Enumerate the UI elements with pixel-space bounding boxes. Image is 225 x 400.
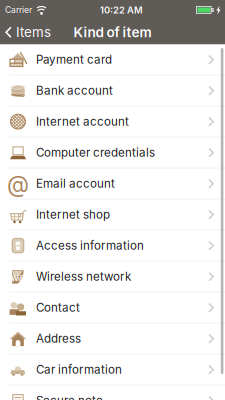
button[interactable]: Internet shop <box>0 199 225 230</box>
staticText: Items <box>16 24 51 40</box>
staticText: Carrier <box>5 5 32 15</box>
button[interactable]: Secure note <box>0 385 225 400</box>
staticText: Computer credentials <box>36 146 155 160</box>
staticText: Internet shop <box>36 208 110 222</box>
staticText: Address <box>36 332 81 346</box>
staticText: Internet account <box>36 115 129 129</box>
button[interactable]: Payment card <box>0 44 225 75</box>
staticText: Car information <box>36 363 122 377</box>
button[interactable]: Address <box>0 323 225 354</box>
staticText: Secure note <box>36 394 103 400</box>
staticText: Kind of item <box>73 24 151 40</box>
button[interactable]: Bank account <box>0 75 225 106</box>
button[interactable]: Internet account <box>0 106 225 137</box>
staticText: Bank account <box>36 84 113 98</box>
staticText: Access information <box>36 239 144 253</box>
staticText: 10:22 AM <box>100 4 143 16</box>
staticText: Contact <box>36 301 80 315</box>
button[interactable]: Computer credentials <box>0 137 225 168</box>
staticText: Wireless network <box>36 270 131 284</box>
button[interactable]: @ <box>0 168 225 199</box>
button[interactable]: Car information <box>0 354 225 385</box>
button[interactable]: Contact <box>0 292 225 323</box>
staticText: Payment card <box>36 53 112 67</box>
staticText: Email account <box>36 177 115 191</box>
staticText: @ <box>7 170 29 197</box>
button[interactable]: Access information <box>0 230 225 261</box>
staticText: WiFi <box>11 274 26 283</box>
button[interactable]: Items <box>0 20 59 44</box>
button[interactable]: WiFi <box>0 261 225 292</box>
